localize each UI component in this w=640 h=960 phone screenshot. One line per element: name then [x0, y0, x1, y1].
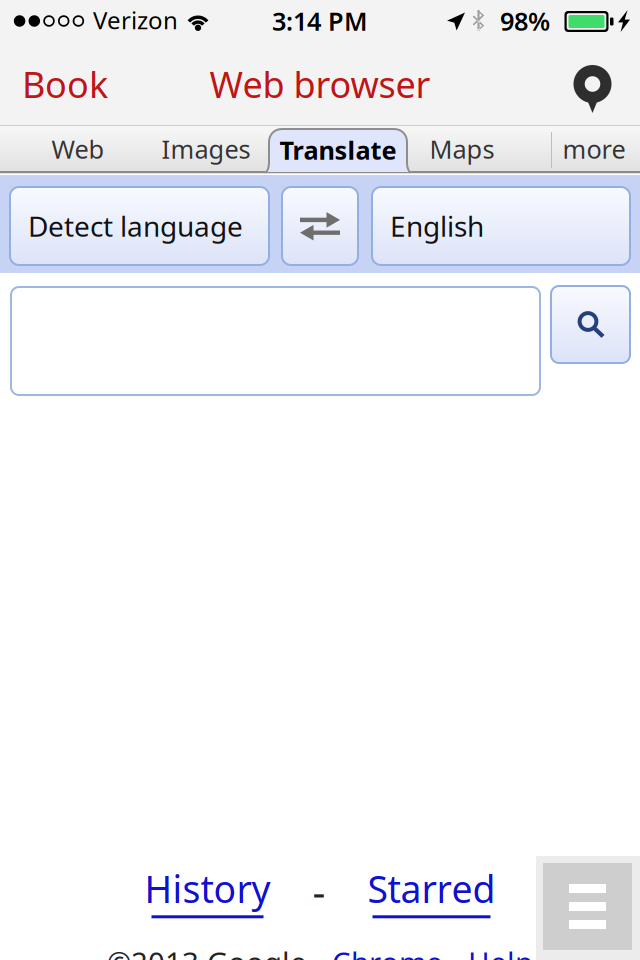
staticText: Starred	[367, 864, 495, 913]
button[interactable]: Search	[551, 286, 630, 363]
staticText: ©2013 Google	[107, 942, 307, 960]
button[interactable]: Images	[150, 126, 262, 172]
button[interactable]: Translate	[254, 128, 422, 172]
staticText: 98%	[500, 4, 550, 38]
button[interactable]: more	[538, 126, 640, 172]
button[interactable]: Swap languages	[282, 187, 358, 265]
staticText: Web browser	[209, 60, 430, 108]
staticText: Web	[51, 132, 104, 166]
button[interactable]: Detect language	[10, 187, 269, 265]
staticText: more	[562, 132, 625, 166]
staticText: Book	[22, 60, 108, 108]
staticText: Translate	[279, 133, 396, 167]
staticText: English	[390, 207, 484, 245]
button[interactable]: Maps	[406, 126, 518, 172]
staticText: Verizon	[93, 4, 178, 36]
staticText: Detect language	[28, 207, 243, 245]
button[interactable]: Location	[545, 42, 640, 126]
button[interactable]: Book	[0, 42, 160, 126]
staticText: Help	[468, 942, 533, 960]
button[interactable]: Web	[22, 126, 134, 172]
staticText: Maps	[429, 132, 494, 166]
staticText: 3:14 PM	[272, 4, 368, 38]
staticText: History	[144, 864, 270, 913]
button[interactable]: Search text field	[11, 287, 540, 395]
button[interactable]: Starred	[367, 864, 495, 918]
button[interactable]: English	[372, 187, 630, 265]
button[interactable]: Menu	[536, 860, 640, 956]
button[interactable]: History	[144, 864, 270, 918]
staticText: -	[312, 864, 325, 917]
staticText: Chrome	[332, 942, 443, 960]
staticText: Images	[161, 132, 250, 166]
